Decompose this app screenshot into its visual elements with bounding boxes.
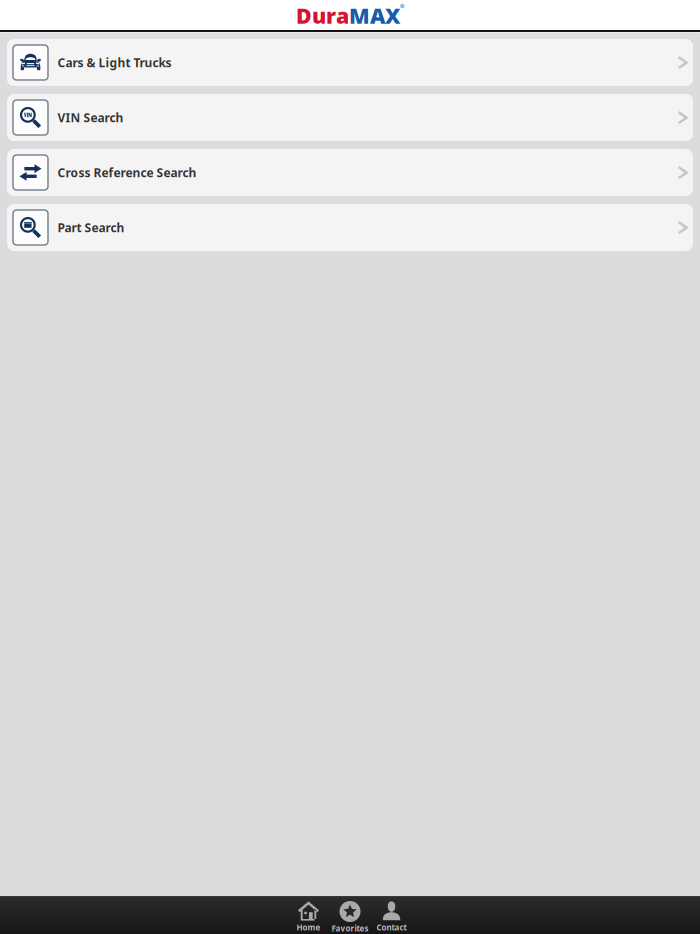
button[interactable]: Home xyxy=(288,896,329,934)
staticText: Contact xyxy=(376,922,406,933)
staticText: Favorites xyxy=(331,923,368,934)
button[interactable]: Cars & Light Trucks xyxy=(7,39,693,86)
button[interactable]: Contact xyxy=(371,896,412,934)
button[interactable]: Cross Reference Search xyxy=(7,149,693,196)
staticText: Part Search xyxy=(57,219,124,235)
button[interactable]: VIN Search xyxy=(7,94,693,141)
staticText: VIN Search xyxy=(57,109,123,125)
staticText: MAX xyxy=(349,1,400,30)
staticText: Cars & Light Trucks xyxy=(57,54,171,70)
button[interactable]: Part Search xyxy=(7,204,693,251)
staticText: Home xyxy=(296,922,320,933)
staticText: ® xyxy=(400,3,404,10)
staticText: Dura xyxy=(296,1,349,30)
button[interactable]: Favorites xyxy=(329,896,371,934)
staticText: Cross Reference Search xyxy=(57,164,196,180)
